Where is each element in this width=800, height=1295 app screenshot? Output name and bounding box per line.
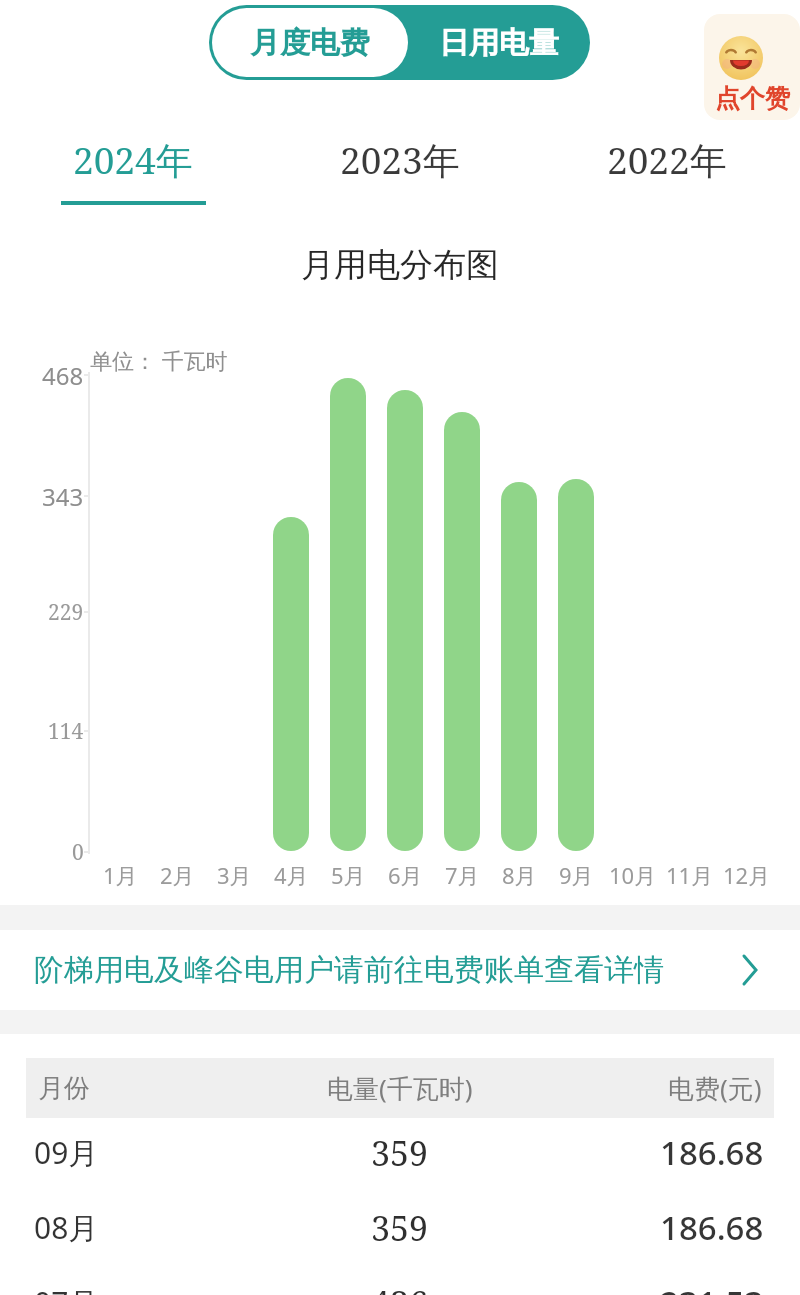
staticText: 点个赞 <box>715 83 790 114</box>
staticText: 343 <box>42 480 84 513</box>
staticText: 2月 <box>160 860 195 890</box>
staticText: 468 <box>42 359 84 392</box>
staticText: 186.68 <box>660 1130 764 1175</box>
staticText: 电量(千瓦时) <box>327 1070 473 1106</box>
button[interactable]: 日用电量 <box>408 5 590 80</box>
staticText: 2024年 <box>73 134 193 185</box>
staticText: 229 <box>48 598 84 627</box>
button[interactable]: 月度电费 <box>212 8 408 77</box>
staticText: 月份 <box>38 1072 90 1105</box>
staticText: 8月 <box>502 860 537 890</box>
button[interactable]: 09月 <box>0 1115 800 1190</box>
staticText: 09月 <box>34 1132 99 1173</box>
staticText: 9月 <box>559 860 594 890</box>
staticText: 0 <box>72 838 84 867</box>
staticText: 电费(元) <box>668 1070 762 1106</box>
staticText: 4月 <box>274 860 309 890</box>
staticText: 359 <box>371 1205 429 1251</box>
button[interactable]: 07月 <box>0 1265 800 1295</box>
button[interactable]: 点个赞 <box>704 14 800 120</box>
staticText: 186.68 <box>660 1205 764 1250</box>
staticText: 日用电量 <box>439 24 559 62</box>
staticText: 08月 <box>34 1207 99 1248</box>
staticText: 436 <box>371 1280 429 1295</box>
staticText: 07月 <box>34 1282 99 1295</box>
staticText: 6月 <box>388 860 423 890</box>
button[interactable]: 08月 <box>0 1190 800 1265</box>
staticText: 阶梯用电及峰谷电用户请前往电费账单查看详情 <box>34 951 664 989</box>
staticText: 114 <box>48 717 84 746</box>
staticText: 单位： 千瓦时 <box>90 345 228 375</box>
staticText: 12月 <box>723 860 771 890</box>
staticText: 10月 <box>609 860 657 890</box>
staticText: 1月 <box>103 860 138 890</box>
staticText: 7月 <box>445 860 480 890</box>
staticText: 359 <box>371 1130 429 1176</box>
staticText: 2022年 <box>607 134 727 185</box>
staticText: 3月 <box>217 860 252 890</box>
staticText: 231.53 <box>660 1280 764 1295</box>
button[interactable]: 2023年 <box>266 128 533 190</box>
staticText: 月用电分布图 <box>301 244 499 286</box>
staticText: 2023年 <box>340 134 460 185</box>
button[interactable]: 2024年 <box>0 128 266 190</box>
staticText: 月度电费 <box>250 24 370 62</box>
staticText: 5月 <box>331 860 366 890</box>
button[interactable]: 阶梯用电及峰谷电用户请前往电费账单查看详情 <box>0 930 800 1010</box>
staticText: 11月 <box>666 860 714 890</box>
button[interactable]: 2022年 <box>533 128 800 190</box>
